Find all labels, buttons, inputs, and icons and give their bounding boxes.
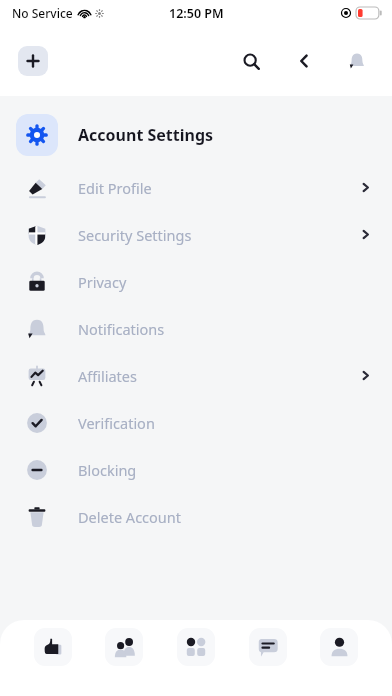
staticText: Security Settings xyxy=(78,225,360,245)
button[interactable]: Add xyxy=(18,46,48,76)
button[interactable]: Affiliates xyxy=(0,352,392,399)
button[interactable]: Verification xyxy=(0,399,392,446)
button[interactable]: Profile xyxy=(320,628,358,666)
staticText: Privacy xyxy=(78,272,371,292)
button[interactable]: Edit Profile xyxy=(0,164,392,211)
button[interactable]: Security Settings xyxy=(0,211,392,258)
staticText: Delete Account xyxy=(78,507,371,527)
staticText: Verification xyxy=(78,413,371,433)
button[interactable]: Blocking xyxy=(0,446,392,493)
button[interactable]: Notifications xyxy=(0,305,392,352)
staticText: Account Settings xyxy=(78,124,214,146)
button[interactable]: Search xyxy=(230,42,272,80)
staticText: Notifications xyxy=(78,319,371,339)
staticText: No Service xyxy=(12,5,73,21)
button[interactable]: Home xyxy=(34,628,72,666)
button[interactable]: Messages xyxy=(249,628,287,666)
button[interactable]: Delete Account xyxy=(0,493,392,540)
staticText: Affiliates xyxy=(78,366,360,386)
staticText: Blocking xyxy=(78,460,371,480)
button[interactable]: Friends xyxy=(105,628,143,666)
button[interactable]: Notifications xyxy=(336,42,378,80)
button[interactable]: Back xyxy=(283,42,325,80)
button[interactable]: Apps xyxy=(177,628,215,666)
button[interactable]: Privacy xyxy=(0,258,392,305)
staticText: Edit Profile xyxy=(78,178,360,198)
staticText: 12:50 PM xyxy=(169,5,224,22)
button[interactable]: Account Settings xyxy=(0,106,392,164)
